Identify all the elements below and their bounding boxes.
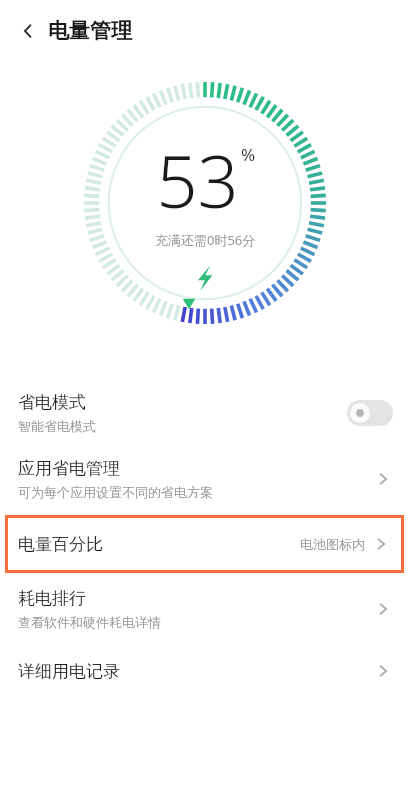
staticText: 电量管理 bbox=[48, 18, 132, 44]
button[interactable]: 电量百分比 bbox=[5, 515, 404, 573]
button[interactable]: Back bbox=[14, 17, 42, 45]
button[interactable]: 应用省电管理 bbox=[0, 446, 409, 512]
button[interactable]: 省电模式 bbox=[0, 380, 409, 446]
staticText: 详细用电记录 bbox=[18, 661, 120, 682]
button[interactable]: 耗电排行 bbox=[0, 576, 409, 642]
staticText: 电量百分比 bbox=[18, 534, 103, 555]
staticText: 可为每个应用设置不同的省电方案 bbox=[18, 484, 213, 500]
staticText: 应用省电管理 bbox=[18, 458, 120, 479]
staticText: 53 bbox=[156, 131, 239, 229]
staticText: 充满还需0时56分 bbox=[155, 231, 256, 249]
staticText: 耗电排行 bbox=[18, 588, 86, 609]
staticText: 省电模式 bbox=[18, 392, 86, 413]
staticText: 查看软件和硬件耗电详情 bbox=[18, 614, 161, 630]
staticText: % bbox=[241, 143, 256, 166]
staticText: 电池图标内 bbox=[300, 536, 365, 552]
button[interactable]: 详细用电记录 bbox=[0, 642, 409, 700]
staticText: 智能省电模式 bbox=[18, 418, 96, 434]
button[interactable]: Toggle power saving mode bbox=[347, 400, 393, 426]
